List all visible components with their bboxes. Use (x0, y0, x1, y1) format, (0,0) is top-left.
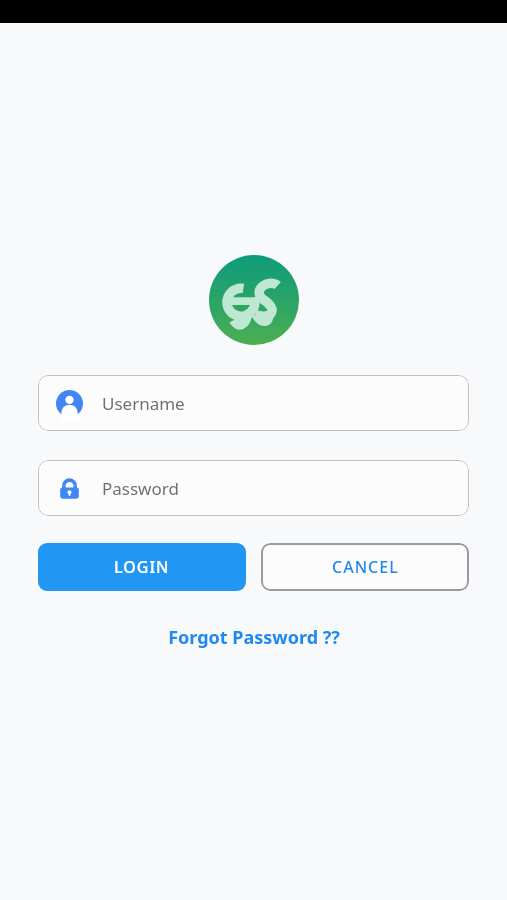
staticText: LOGIN (114, 556, 170, 578)
staticText: Username (102, 392, 185, 415)
button[interactable]: CANCEL (261, 543, 469, 591)
other: Username (56, 390, 83, 417)
button[interactable]: Username (38, 375, 469, 431)
staticText: Forgot Password ?? (168, 625, 340, 650)
button[interactable]: Password (38, 460, 469, 516)
button[interactable]: Forgot Password ?? (158, 621, 350, 654)
button[interactable]: LOGIN (38, 543, 246, 591)
staticText: Password (102, 477, 179, 500)
staticText: CANCEL (332, 556, 399, 578)
other: Password (56, 475, 83, 502)
